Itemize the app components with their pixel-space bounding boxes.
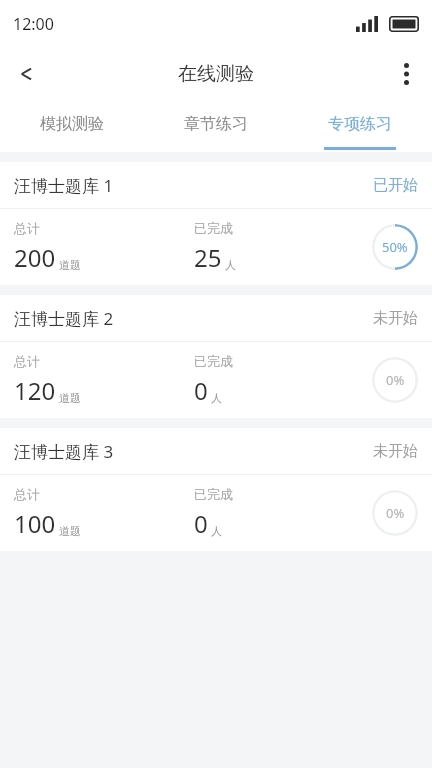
button[interactable]: 汪博士题库 2 <box>0 295 432 418</box>
button[interactable]: 章节练习 <box>144 100 288 152</box>
staticText: 已开始 <box>373 176 418 195</box>
staticText: 汪博士题库 2 <box>14 307 114 330</box>
staticText: 50% <box>382 238 408 256</box>
staticText: 道题 <box>59 258 81 272</box>
staticText: 在线测验 <box>178 62 254 86</box>
staticText: 道题 <box>59 524 81 538</box>
staticText: 12:00 <box>13 13 54 35</box>
button[interactable]: More options <box>380 48 432 100</box>
staticText: 汪博士题库 3 <box>14 440 114 463</box>
staticText: 人 <box>211 391 222 405</box>
staticText: 总计 <box>14 486 40 502</box>
staticText: 人 <box>211 524 222 538</box>
staticText: 专项练习 <box>328 114 392 134</box>
button[interactable]: Back <box>0 48 52 100</box>
staticText: 未开始 <box>373 442 418 461</box>
button[interactable]: 专项练习 <box>288 100 432 152</box>
staticText: 总计 <box>14 220 40 236</box>
staticText: 已完成 <box>194 220 233 236</box>
staticText: 汪博士题库 1 <box>14 174 114 197</box>
staticText: 25 <box>194 241 222 274</box>
staticText: 200 <box>14 241 56 274</box>
staticText: 0% <box>386 504 405 522</box>
staticText: 0 <box>194 507 208 540</box>
staticText: 总计 <box>14 353 40 369</box>
staticText: 模拟测验 <box>40 114 104 134</box>
staticText: 已完成 <box>194 486 233 502</box>
staticText: 0% <box>386 371 405 389</box>
button[interactable]: 模拟测验 <box>0 100 144 152</box>
button[interactable]: 汪博士题库 1 <box>0 162 432 285</box>
staticText: 100 <box>14 507 56 540</box>
staticText: 章节练习 <box>184 114 248 134</box>
staticText: 道题 <box>59 391 81 405</box>
staticText: 人 <box>225 258 236 272</box>
staticText: 0 <box>194 374 208 407</box>
staticText: 未开始 <box>373 309 418 328</box>
staticText: 已完成 <box>194 353 233 369</box>
button[interactable]: 汪博士题库 3 <box>0 428 432 551</box>
staticText: 120 <box>14 374 56 407</box>
